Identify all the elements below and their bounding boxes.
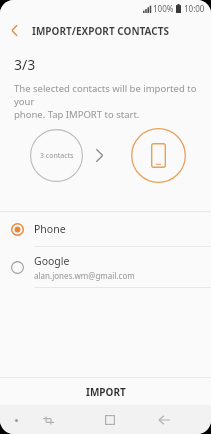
button[interactable]: Google (0, 247, 211, 287)
staticText: Phone (34, 222, 66, 236)
staticText: 100% (153, 3, 174, 14)
staticText: The selected contacts will be imported t… (14, 82, 197, 121)
staticText: alan.jones.wm@gmail.com (34, 270, 135, 281)
button[interactable]: Home (99, 409, 121, 431)
button[interactable]: Menu indicator (8, 412, 24, 428)
staticText: IMPORT (86, 385, 126, 399)
staticText: 3 contacts (40, 151, 74, 161)
staticText: 3/3 (14, 55, 36, 74)
button[interactable]: Back (153, 409, 175, 431)
button[interactable]: Back (0, 17, 28, 44)
staticText: IMPORT/EXPORT CONTACTS (32, 24, 170, 38)
button[interactable]: Recents (38, 410, 58, 430)
button[interactable]: IMPORT (0, 378, 211, 405)
staticText: 10:00 (184, 3, 205, 14)
button[interactable]: Phone (0, 212, 211, 246)
staticText: Google (34, 254, 70, 268)
